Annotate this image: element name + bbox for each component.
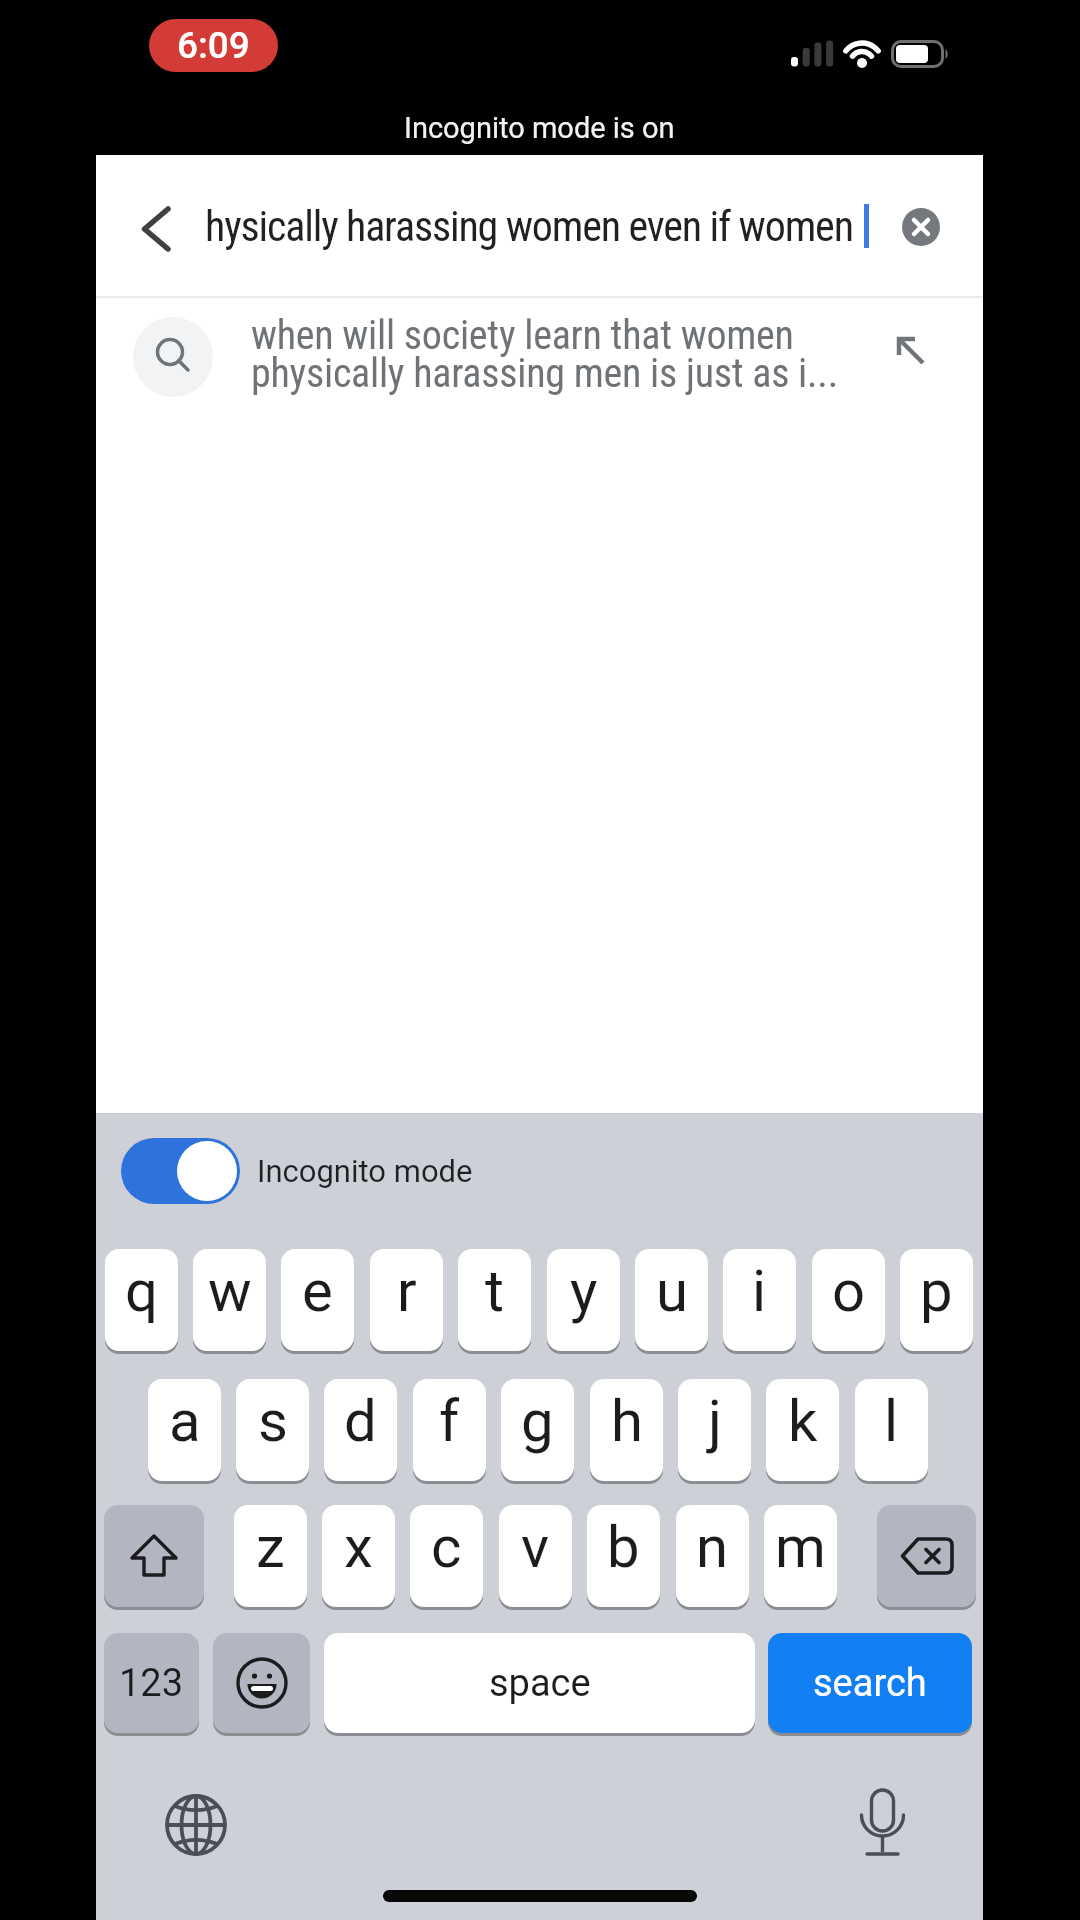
staticText: Incognito mode is on [404,111,675,145]
button[interactable]: c [410,1505,483,1607]
staticText: x [344,1513,373,1581]
staticText: n [696,1513,729,1581]
button[interactable]: search [768,1633,972,1733]
button[interactable]: i [723,1249,796,1351]
button[interactable]: x [322,1505,395,1607]
button[interactable]: k [766,1379,839,1481]
button[interactable]: space [324,1633,755,1733]
button[interactable]: o [812,1249,885,1351]
staticText: d [344,1387,377,1455]
staticText: j [708,1387,722,1455]
button[interactable]: q [105,1249,178,1351]
button[interactable]: p [900,1249,973,1351]
button[interactable]: b [587,1505,660,1607]
button[interactable]: a [148,1379,221,1481]
staticText: h [611,1387,643,1455]
button[interactable] [877,1505,976,1607]
button[interactable] [894,334,930,370]
button[interactable] [858,1788,906,1860]
staticText: a [169,1387,201,1455]
button[interactable]: e [281,1249,354,1351]
button[interactable]: r [370,1249,443,1351]
staticText: u [656,1257,688,1325]
staticText: r [397,1257,417,1325]
staticText: y [570,1257,598,1325]
staticText: o [832,1257,866,1325]
staticText: 123 [119,1661,184,1706]
staticText: physically harassing men is just as i... [251,350,838,397]
staticText: g [521,1387,554,1455]
staticText: l [884,1387,899,1455]
button[interactable]: 6:09 [149,19,278,72]
staticText: f [439,1387,460,1455]
button[interactable]: u [635,1249,708,1351]
staticText: t [485,1257,504,1325]
staticText: s [258,1387,288,1455]
button[interactable] [902,208,940,246]
button[interactable]: h [590,1379,663,1481]
staticText: 6:09 [177,24,250,67]
staticText: z [256,1513,285,1581]
staticText: v [521,1513,550,1581]
button[interactable]: 123 [104,1633,199,1733]
button[interactable] [96,302,983,414]
staticText: p [920,1257,953,1325]
button[interactable] [104,1505,204,1607]
button[interactable]: g [501,1379,574,1481]
button[interactable] [164,1793,228,1857]
button[interactable]: y [547,1249,620,1351]
staticText: space [489,1661,591,1706]
button[interactable]: z [234,1505,307,1607]
staticText: search [813,1661,927,1706]
button[interactable]: f [413,1379,486,1481]
button[interactable]: m [764,1505,837,1607]
staticText: i [752,1257,767,1325]
staticText: k [788,1387,818,1455]
button[interactable]: v [499,1505,572,1607]
button[interactable] [121,1138,240,1204]
button[interactable]: w [193,1249,266,1351]
staticText: hysically harassing women even if women [205,202,853,251]
staticText: m [775,1513,826,1581]
staticText: b [607,1513,640,1581]
staticText: w [208,1257,252,1325]
button[interactable]: n [676,1505,749,1607]
staticText: e [302,1257,333,1325]
staticText: q [125,1257,158,1325]
staticText: c [431,1513,462,1581]
button[interactable]: s [236,1379,309,1481]
button[interactable] [140,206,172,252]
button[interactable]: d [324,1379,397,1481]
button[interactable]: t [458,1249,531,1351]
button[interactable]: j [678,1379,751,1481]
staticText: Incognito mode [257,1153,473,1189]
staticText: when will society learn that women [251,312,794,359]
button[interactable]: l [855,1379,928,1481]
button[interactable] [213,1633,310,1733]
